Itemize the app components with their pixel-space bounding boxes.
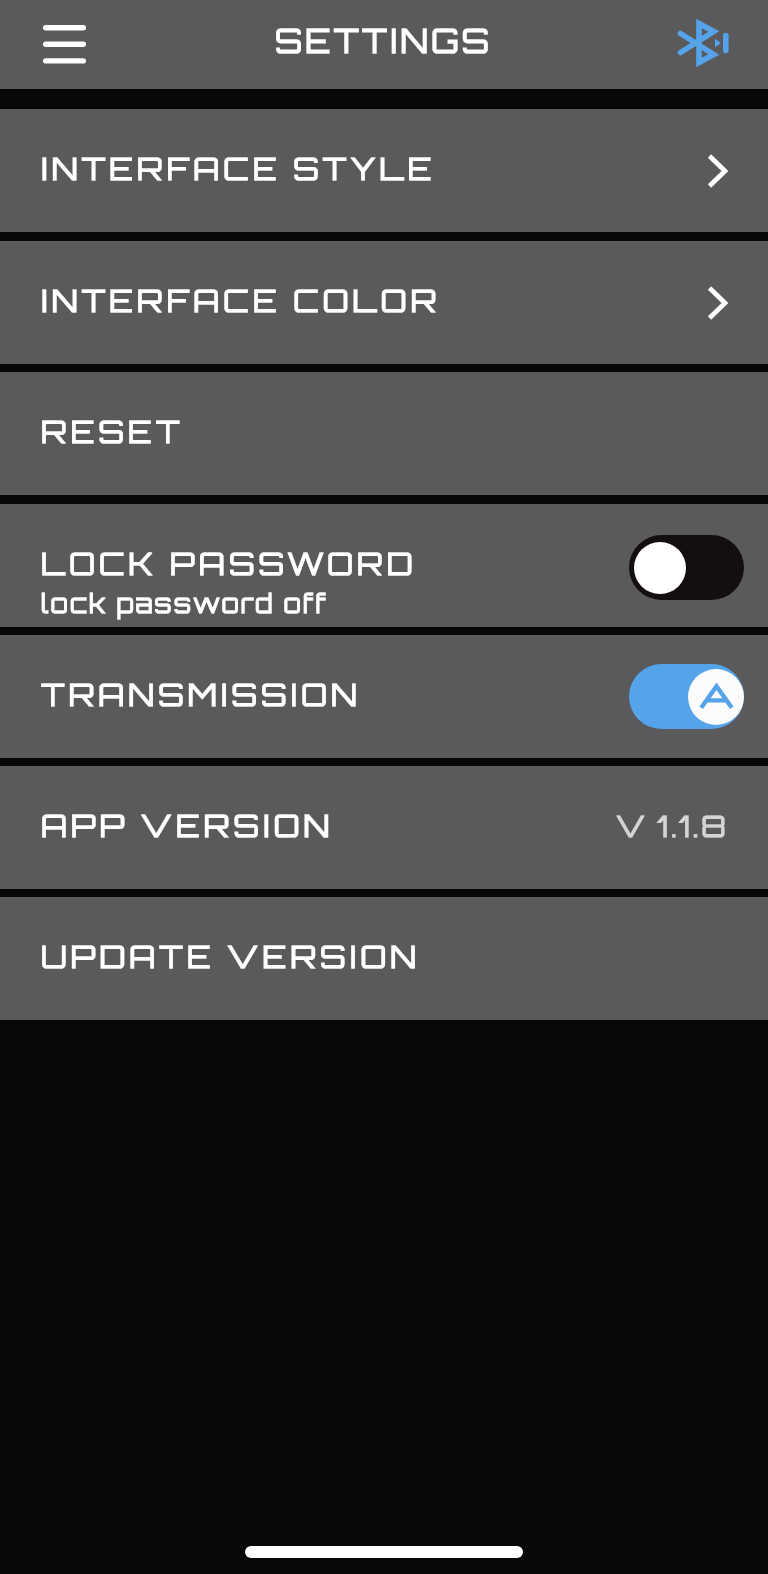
staticText: LOCK PASSWORD <box>41 544 417 583</box>
button[interactable]: RESET <box>0 372 768 495</box>
staticText: SETTINGS <box>275 20 493 61</box>
button[interactable]: LOCK PASSWORD <box>0 504 768 627</box>
staticText: INTERFACE STYLE <box>41 149 436 188</box>
button[interactable]: INTERFACE STYLE <box>0 109 768 232</box>
button[interactable]: Open <box>707 151 744 191</box>
button[interactable]: Open <box>707 283 744 323</box>
staticText: INTERFACE COLOR <box>41 281 441 320</box>
staticText: TRANSMISSION <box>41 675 361 714</box>
button[interactable]: Transmission, automatic <box>629 664 744 729</box>
button[interactable]: APP VERSION <box>0 766 768 889</box>
staticText: V 1.1.8 <box>616 808 728 844</box>
staticText: APP VERSION <box>41 806 334 845</box>
staticText: UPDATE VERSION <box>41 937 421 976</box>
staticText: lock password off <box>41 588 328 619</box>
button[interactable]: Lock password, off <box>629 535 744 600</box>
button[interactable]: TRANSMISSION <box>0 635 768 758</box>
button[interactable]: UPDATE VERSION <box>0 897 768 1020</box>
button[interactable]: INTERFACE COLOR <box>0 241 768 364</box>
button[interactable]: Bluetooth <box>657 0 741 82</box>
button[interactable]: Open navigation menu <box>22 5 107 83</box>
staticText: RESET <box>41 412 184 451</box>
